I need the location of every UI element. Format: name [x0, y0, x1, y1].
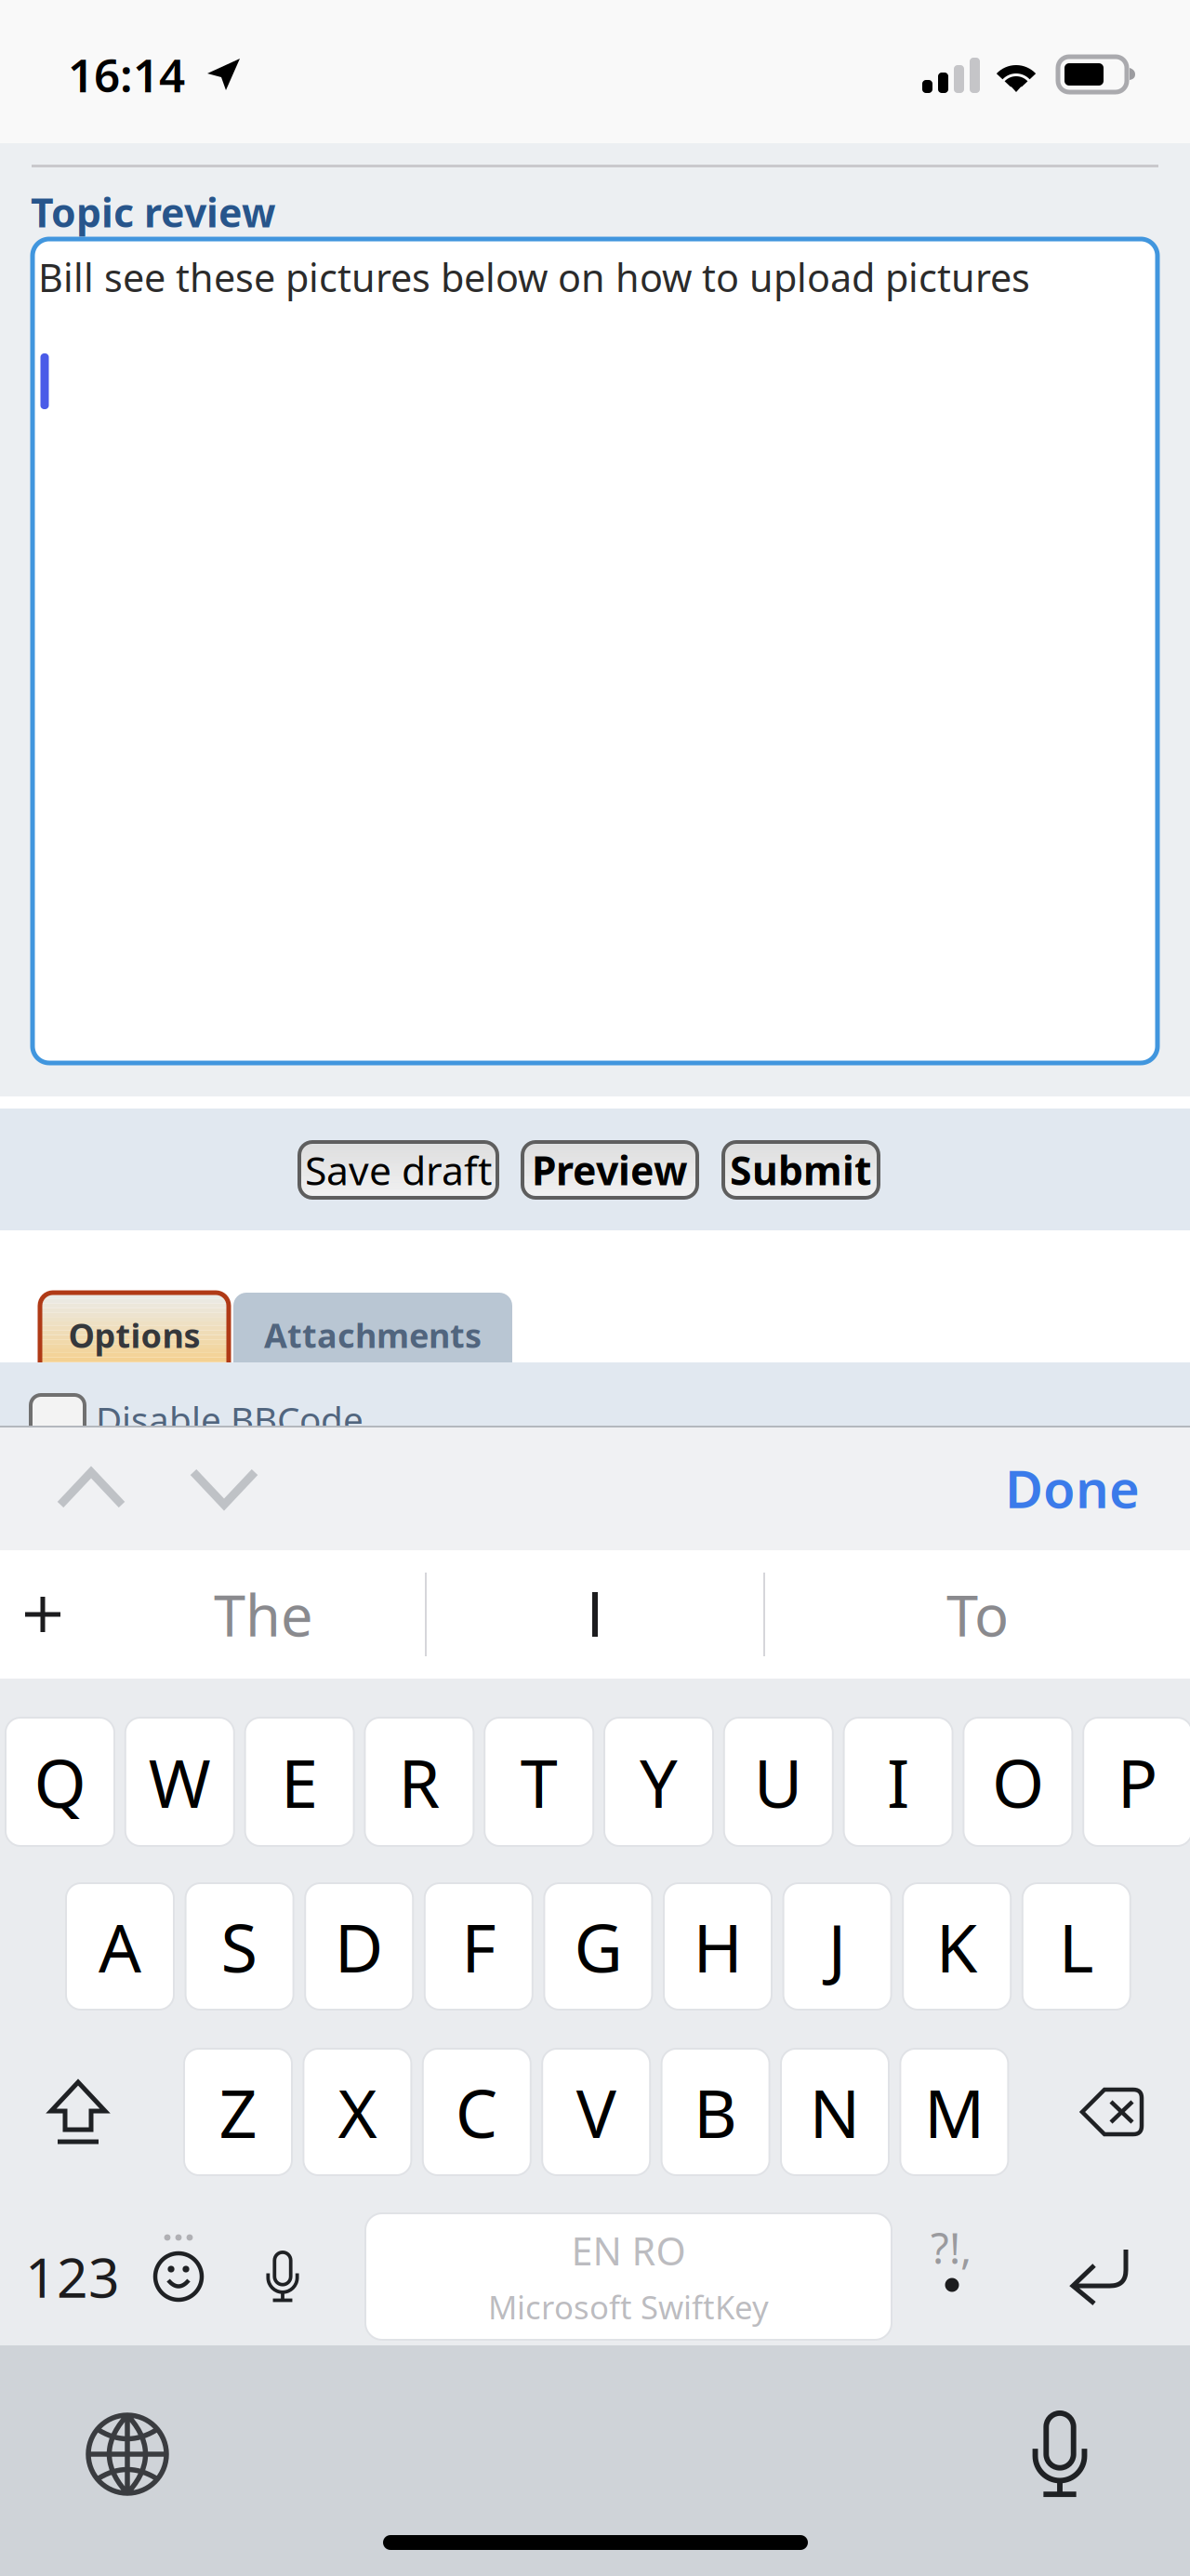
button[interactable]: X — [303, 2049, 411, 2175]
staticText: Z — [219, 2067, 257, 2156]
button[interactable]: H — [664, 1883, 772, 2010]
button[interactable]: N — [781, 2049, 889, 2175]
staticText: F — [461, 1902, 496, 1991]
button[interactable]: Punctuation — [895, 2205, 1007, 2331]
button[interactable]: Emoji — [125, 2205, 232, 2331]
staticText: C — [455, 2067, 498, 2156]
staticText: D — [334, 1902, 384, 1991]
staticText: I — [887, 1737, 909, 1826]
button[interactable]: Attachments — [233, 1293, 512, 1377]
staticText: The — [214, 1577, 313, 1652]
staticText: G — [574, 1902, 622, 1991]
staticText: M — [924, 2067, 984, 2156]
staticText: Submit — [730, 1144, 872, 1196]
button[interactable]: Z — [184, 2049, 292, 2175]
button[interactable]: The — [102, 1550, 425, 1679]
button[interactable]: Options — [40, 1293, 229, 1377]
button[interactable]: W — [125, 1718, 234, 1846]
button[interactable]: S — [186, 1883, 293, 2010]
button[interactable]: M — [900, 2049, 1008, 2175]
button[interactable]: K — [903, 1883, 1011, 2010]
staticText: A — [99, 1902, 141, 1991]
staticText: T — [520, 1737, 558, 1826]
button[interactable]: B — [662, 2049, 769, 2175]
staticText: L — [1059, 1902, 1094, 1991]
staticText: N — [809, 2067, 860, 2156]
button[interactable]: A — [66, 1883, 174, 2010]
staticText: R — [398, 1737, 440, 1826]
button[interactable]: Next field — [161, 1435, 287, 1541]
button[interactable]: Submit — [723, 1142, 879, 1198]
staticText: Disable BBCode — [96, 1395, 364, 1443]
button[interactable]: C — [423, 2049, 531, 2175]
staticText: Bill see these pictures below on how to … — [38, 252, 1030, 303]
staticText: Attachments — [264, 1313, 482, 1357]
staticText: H — [693, 1902, 742, 1991]
button[interactable]: G — [544, 1883, 652, 2010]
staticText: Topic review — [31, 186, 276, 238]
button[interactable]: T — [485, 1718, 593, 1846]
staticText: To — [946, 1577, 1009, 1652]
staticText: W — [149, 1737, 211, 1826]
button[interactable]: V — [542, 2049, 650, 2175]
button[interactable]: Q — [6, 1718, 114, 1846]
button[interactable]: Dictation — [985, 2380, 1134, 2529]
staticText: P — [1117, 1737, 1158, 1826]
button[interactable]: 123 — [13, 2213, 132, 2340]
button[interactable]: O — [964, 1718, 1072, 1846]
button[interactable]: Return — [1037, 2213, 1163, 2340]
button[interactable]: Dictation — [229, 2213, 337, 2340]
button[interactable]: Previous field — [28, 1435, 154, 1541]
button[interactable]: Add — [0, 1550, 86, 1679]
staticText: U — [754, 1737, 803, 1826]
button[interactable] — [427, 1550, 763, 1679]
button[interactable]: E — [245, 1718, 354, 1846]
button[interactable]: L — [1022, 1883, 1130, 2010]
button[interactable]: U — [724, 1718, 833, 1846]
staticText: Preview — [532, 1144, 688, 1196]
staticText: E — [281, 1737, 318, 1826]
button[interactable]: Done — [948, 1435, 1140, 1541]
staticText: Q — [34, 1737, 86, 1826]
staticText: 16:14 — [68, 44, 185, 105]
button[interactable]: EN RO — [365, 2213, 892, 2340]
staticText: S — [221, 1902, 258, 1991]
button[interactable]: To — [765, 1550, 1190, 1679]
button[interactable]: F — [425, 1883, 533, 2010]
staticText: 123 — [25, 2240, 120, 2313]
button[interactable]: Shift — [9, 2049, 147, 2175]
staticText: Y — [640, 1737, 678, 1826]
staticText: V — [576, 2067, 616, 2156]
staticText: B — [694, 2067, 737, 2156]
button[interactable]: Preview — [522, 1142, 697, 1198]
staticText: Microsoft SwiftKey — [488, 2285, 769, 2328]
staticText: J — [828, 1902, 847, 1991]
staticText: Options — [68, 1313, 200, 1357]
staticText: ?!, — [931, 2220, 972, 2276]
staticText: O — [992, 1737, 1044, 1826]
button[interactable]: Delete — [1043, 2049, 1181, 2175]
button[interactable]: Y — [604, 1718, 713, 1846]
button[interactable]: R — [365, 1718, 474, 1846]
button[interactable]: J — [783, 1883, 891, 2010]
button[interactable]: Save draft — [299, 1142, 497, 1198]
button[interactable]: Next keyboard — [53, 2380, 202, 2529]
button[interactable]: D — [305, 1883, 413, 2010]
button[interactable]: I — [844, 1718, 953, 1846]
staticText: X — [338, 2067, 377, 2156]
staticText: Save draft — [305, 1144, 492, 1196]
staticText: K — [936, 1902, 978, 1991]
staticText: EN RO — [571, 2225, 686, 2276]
staticText: Done — [1005, 1453, 1140, 1523]
button[interactable]: P — [1083, 1718, 1190, 1846]
